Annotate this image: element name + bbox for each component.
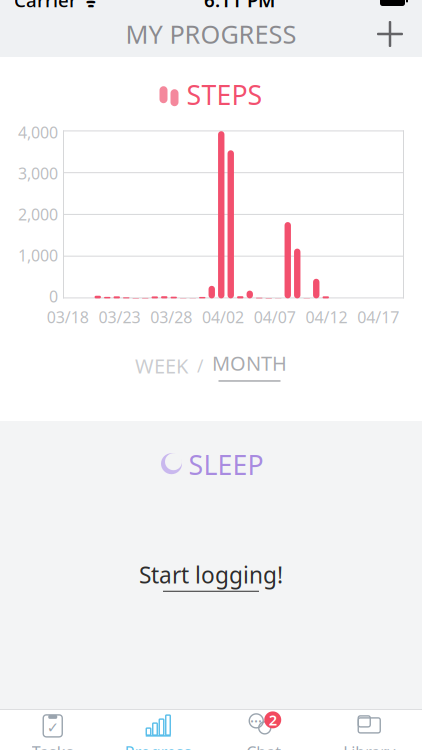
staticText: 03/18 xyxy=(47,306,89,328)
staticText: 03/28 xyxy=(150,306,192,328)
staticText: / xyxy=(197,354,203,377)
button[interactable]: Add xyxy=(368,12,412,56)
staticText: 04/02 xyxy=(202,306,244,328)
staticText: Progress xyxy=(125,741,192,750)
button[interactable]: WEEK xyxy=(135,348,188,383)
staticText: Chat xyxy=(246,741,281,750)
staticText: ✓ xyxy=(47,719,59,736)
staticText: 2 xyxy=(269,710,277,730)
staticText: 04/12 xyxy=(305,306,347,328)
staticText: 0 xyxy=(49,286,58,307)
staticText: 03/23 xyxy=(99,306,141,328)
staticText: MONTH xyxy=(212,350,287,376)
staticText: 1,000 xyxy=(18,245,58,266)
staticText: WEEK xyxy=(135,352,188,379)
button[interactable]: ✓ xyxy=(0,708,105,750)
staticText: 4,000 xyxy=(18,122,58,143)
staticText: ••• xyxy=(250,715,262,727)
staticText: 6:11 PM xyxy=(204,0,275,12)
button[interactable]: Start logging! xyxy=(139,560,283,592)
staticText: 3,000 xyxy=(18,163,58,184)
staticText: 04/17 xyxy=(357,306,399,328)
staticText: STEPS xyxy=(186,77,262,112)
staticText: 2,000 xyxy=(18,204,58,225)
button[interactable]: ••• xyxy=(211,708,316,750)
staticText: SLEEP xyxy=(188,447,263,482)
staticText: Carrier xyxy=(14,0,77,12)
staticText: ᯤ xyxy=(77,0,99,12)
staticText: MY PROGRESS xyxy=(125,17,296,51)
staticText: Library xyxy=(343,741,395,750)
staticText: Start logging! xyxy=(139,560,283,590)
staticText: Tasks xyxy=(32,741,74,750)
staticText: 04/07 xyxy=(254,306,296,328)
button[interactable]: MONTH xyxy=(212,348,287,384)
button[interactable]: Progress xyxy=(105,708,211,750)
button[interactable]: Library xyxy=(316,708,422,750)
